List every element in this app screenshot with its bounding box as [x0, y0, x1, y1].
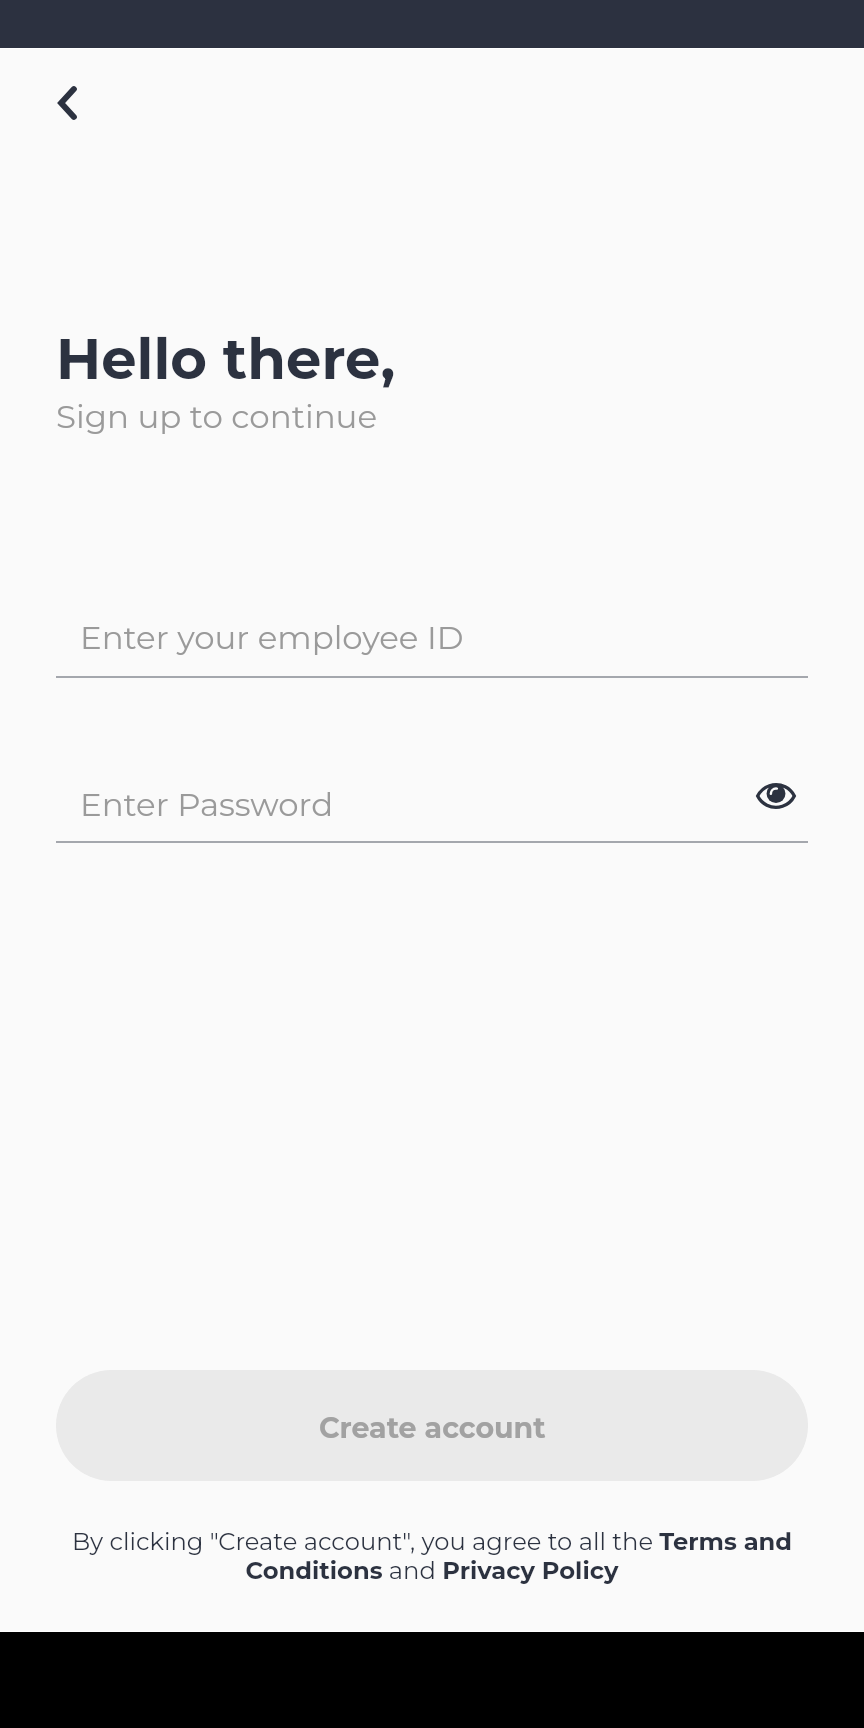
button[interactable]: Back	[37, 73, 97, 133]
staticText: Hello there,	[56, 325, 396, 393]
staticText: Enter your employee ID	[80, 618, 464, 657]
staticText: Create account	[319, 1410, 546, 1445]
button[interactable]: Show password	[748, 768, 804, 824]
button[interactable]: Enter Password	[56, 769, 808, 843]
staticText: Sign up to continue	[56, 397, 378, 437]
staticText: By clicking "Create account", you agree …	[36, 1527, 828, 1585]
button[interactable]: Enter your employee ID	[56, 602, 808, 678]
staticText: Enter Password	[80, 785, 334, 824]
button[interactable]: Create account	[56, 1370, 808, 1481]
